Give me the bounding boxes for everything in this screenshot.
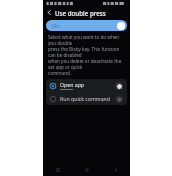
button[interactable]: Recents <box>43 163 72 176</box>
button[interactable]: Settings for Run quick command <box>115 95 123 103</box>
button[interactable]: Navigate up <box>45 8 54 17</box>
staticText: press the Bixby key. This function can b… <box>48 46 125 58</box>
button[interactable]: Home <box>72 163 101 176</box>
staticText: On <box>52 22 60 29</box>
button[interactable]: Back <box>101 163 130 176</box>
button[interactable]: Run quick command <box>46 92 127 105</box>
staticText: command. <box>48 70 72 76</box>
staticText: Use double press <box>55 9 106 17</box>
button[interactable]: On <box>46 20 127 31</box>
staticText: Select what you want to do when you doub… <box>48 34 125 46</box>
button[interactable]: Settings for Open app <box>115 82 123 90</box>
staticText: Run quick command <box>60 95 110 102</box>
staticText: Open app <box>60 81 85 88</box>
staticText: when you delete or deactivate the set ap… <box>48 58 125 70</box>
button[interactable]: Open app <box>46 79 127 92</box>
